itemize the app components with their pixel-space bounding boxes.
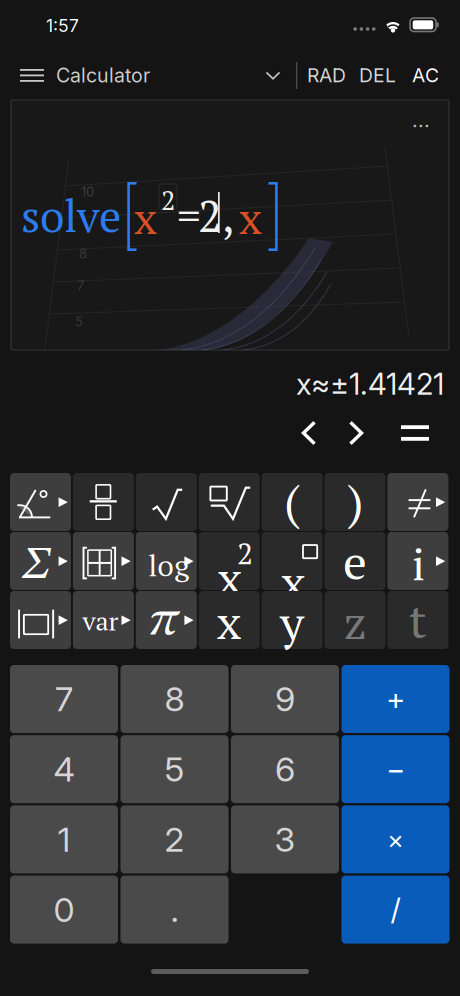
button[interactable]: t (387, 591, 448, 649)
button[interactable]: y (262, 591, 323, 649)
staticText: 7 (77, 278, 84, 294)
staticText: 2 (164, 819, 184, 860)
staticText: x (239, 188, 262, 247)
button[interactable]: ) (324, 473, 385, 531)
staticText: 8 (79, 246, 87, 262)
staticText: 5 (75, 314, 83, 330)
button[interactable]: 5 (120, 735, 228, 803)
button[interactable]: Calculator (56, 50, 156, 100)
button[interactable]: Imaginary unit (387, 532, 448, 590)
button[interactable]: Menu (12, 50, 60, 100)
staticText: 0 (53, 889, 74, 930)
staticText: DEL (359, 63, 396, 87)
staticText: − (386, 751, 405, 787)
staticText: 1 (57, 819, 70, 860)
staticText: ··· (412, 114, 430, 138)
staticText: x (281, 549, 306, 612)
staticText: x (217, 545, 242, 608)
button[interactable]: 0 (10, 876, 118, 944)
staticText: ) (347, 469, 363, 533)
button[interactable]: 7 (10, 665, 118, 733)
staticText: 2 (237, 533, 253, 573)
staticText: 1:57 (46, 15, 79, 36)
staticText: x (217, 589, 242, 652)
button[interactable]: z (324, 591, 385, 649)
staticText: ( (284, 469, 300, 533)
button[interactable]: Comparison operators (387, 473, 448, 531)
button[interactable]: More options (401, 110, 441, 142)
button[interactable]: 1 (10, 805, 118, 873)
button[interactable]: Multiply (341, 805, 449, 873)
staticText: i (412, 535, 425, 592)
button[interactable]: 8 (120, 665, 228, 733)
button[interactable]: Fraction (73, 473, 134, 531)
staticText: 4 (53, 749, 74, 790)
button[interactable]: Matrix (73, 532, 134, 590)
staticText: 𝛴 (22, 543, 50, 589)
staticText: z (343, 589, 366, 652)
staticText: , (222, 186, 235, 245)
staticText: 2 (198, 186, 222, 245)
staticText: x (134, 188, 157, 247)
staticText: 9 (275, 678, 295, 719)
staticText: var (82, 603, 118, 638)
button[interactable]: 4 (10, 735, 118, 803)
button[interactable]: Minus (341, 735, 449, 803)
staticText: 8 (164, 678, 184, 719)
staticText: Calculator (56, 63, 150, 87)
button[interactable]: Evaluate (388, 410, 442, 456)
staticText: 5 (164, 749, 184, 790)
button[interactable]: RAD (307, 50, 359, 100)
staticText: 6 (275, 749, 295, 790)
button[interactable]: 3 (231, 805, 339, 873)
staticText: 7 (55, 678, 73, 719)
button[interactable]: Plus (341, 665, 449, 733)
button[interactable]: x to the power (262, 532, 323, 590)
button[interactable]: e (324, 532, 385, 590)
staticText: = (177, 186, 201, 245)
button[interactable]: DEL (359, 50, 406, 100)
staticText: log (148, 545, 190, 585)
button[interactable]: Absolute value (10, 591, 71, 649)
staticText: RAD (307, 63, 346, 87)
button[interactable]: Previous expression (286, 410, 332, 456)
staticText: t (409, 588, 427, 651)
staticText: x≈±1.41421 (296, 366, 444, 402)
staticText: solve (21, 186, 121, 245)
button[interactable]: 6 (231, 735, 339, 803)
button[interactable]: x (199, 591, 260, 649)
staticText: 2 (161, 182, 175, 218)
button[interactable]: Logarithm (136, 532, 197, 590)
staticText: y (280, 590, 304, 653)
button[interactable]: AC (412, 50, 454, 100)
button[interactable]: Nth root (199, 473, 260, 531)
staticText: 3 (274, 819, 295, 860)
staticText: 𝜋 (149, 596, 181, 646)
button[interactable]: Square root (136, 473, 197, 531)
button[interactable]: Next expression (333, 410, 379, 456)
staticText: 10 (81, 184, 94, 200)
button[interactable]: . (120, 876, 228, 944)
staticText: / (390, 891, 400, 928)
button[interactable]: Angle with degrees (10, 473, 71, 531)
button[interactable]: Constants (136, 591, 197, 649)
staticText: AC (412, 63, 439, 87)
button[interactable]: Sum (10, 532, 71, 590)
staticText: . (170, 889, 178, 930)
staticText: e (343, 529, 367, 592)
button[interactable]: Choose calculator mode (250, 50, 296, 100)
button[interactable]: x squared (199, 532, 260, 590)
button[interactable]: 2 (120, 805, 228, 873)
button[interactable]: 9 (231, 665, 339, 733)
staticText: × (387, 824, 404, 855)
button[interactable]: Variables (73, 591, 134, 649)
button[interactable]: ( (262, 473, 323, 531)
button[interactable]: Divide (341, 876, 449, 944)
staticText: + (386, 681, 405, 717)
